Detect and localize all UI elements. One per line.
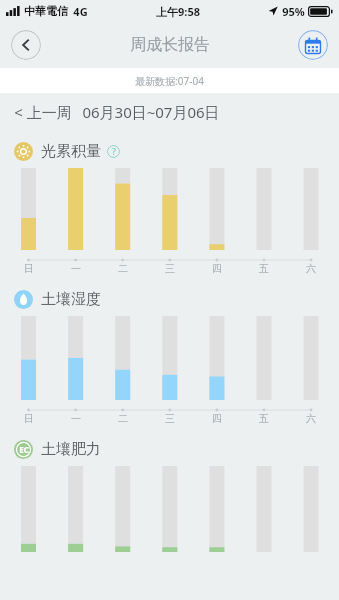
- staticText: 光累积量: [41, 142, 101, 161]
- button[interactable]: < 上一周: [0, 93, 339, 131]
- staticText: 上午9:58: [156, 4, 200, 19]
- staticText: 二: [118, 412, 128, 425]
- staticText: 06月30日~07月06日: [82, 102, 220, 122]
- staticText: 一: [71, 262, 81, 275]
- staticText: 五: [259, 412, 269, 425]
- staticText: 中華電信: [24, 4, 68, 18]
- staticText: 一: [71, 412, 81, 425]
- staticText: 95%: [282, 4, 305, 19]
- staticText: 土壤湿度: [41, 290, 101, 309]
- button[interactable]: Calendar: [298, 30, 328, 60]
- button[interactable]: Back: [11, 30, 41, 60]
- staticText: 周成长报告: [130, 35, 210, 55]
- staticText: ?: [112, 146, 116, 157]
- staticText: < 上一周: [14, 102, 72, 122]
- staticText: 4G: [73, 4, 88, 19]
- staticText: 土壤肥力: [41, 440, 101, 459]
- staticText: 六: [306, 412, 316, 425]
- staticText: 四: [212, 412, 222, 425]
- staticText: 日: [24, 412, 34, 425]
- staticText: 四: [212, 262, 222, 275]
- staticText: 三: [165, 262, 175, 275]
- button[interactable]: Help: [107, 145, 120, 158]
- staticText: EC: [19, 444, 29, 455]
- staticText: 最新数据:07-04: [135, 74, 204, 88]
- staticText: 日: [24, 262, 34, 275]
- staticText: 六: [306, 262, 316, 275]
- staticText: 三: [165, 412, 175, 425]
- staticText: 二: [118, 262, 128, 275]
- staticText: 五: [259, 262, 269, 275]
